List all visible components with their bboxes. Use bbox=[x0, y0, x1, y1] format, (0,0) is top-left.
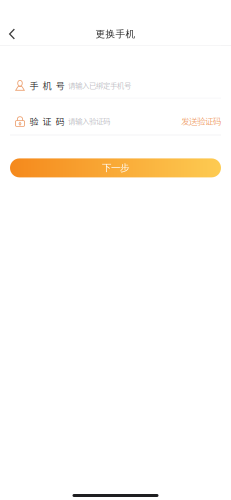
button[interactable]: 返回 bbox=[0, 23, 24, 45]
staticText: 请输入验证码 bbox=[68, 116, 110, 126]
staticText: 发送验证码 bbox=[181, 115, 221, 127]
staticText: 手 机 号 bbox=[29, 79, 64, 92]
staticText: 请输入已绑定手机号 bbox=[68, 80, 131, 91]
button[interactable]: 发送验证码 bbox=[181, 115, 221, 127]
staticText: 更换手机 bbox=[95, 28, 135, 40]
button[interactable]: 下一步 bbox=[10, 158, 221, 177]
staticText: 验 证 码 bbox=[29, 114, 64, 128]
staticText: 下一步 bbox=[102, 162, 129, 174]
